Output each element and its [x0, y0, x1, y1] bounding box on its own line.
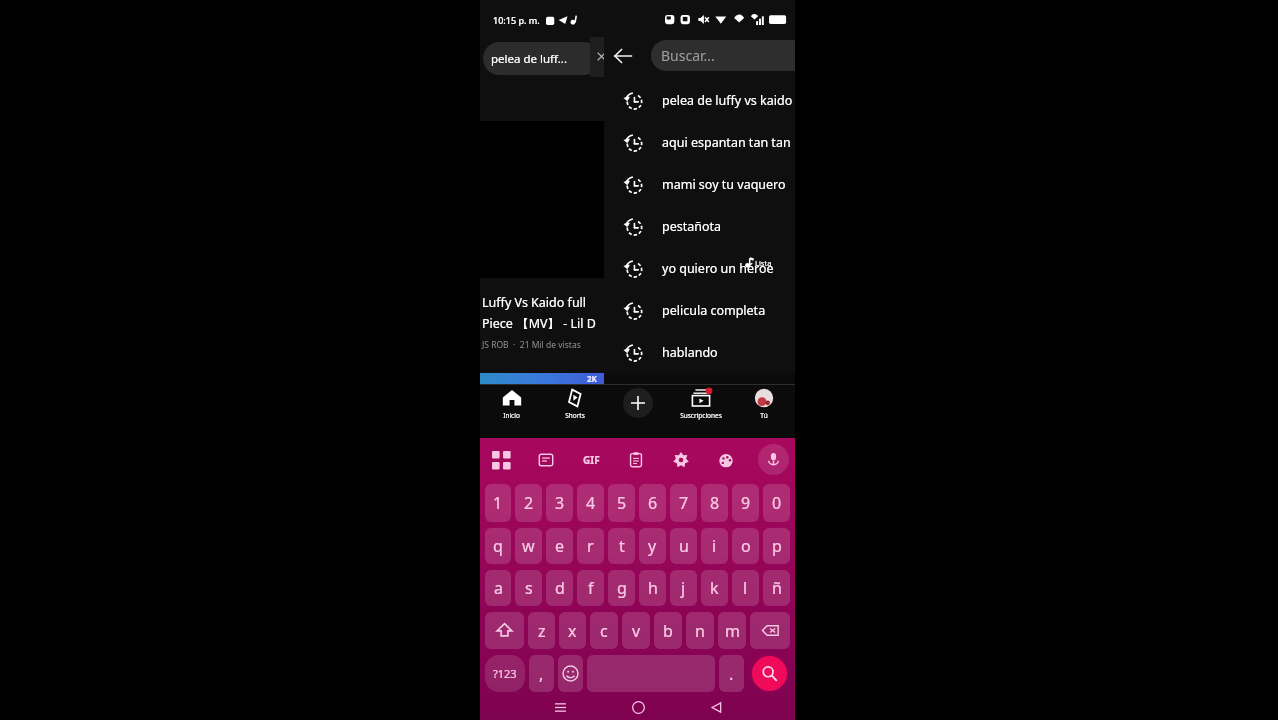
button[interactable]: 9 — [732, 484, 759, 522]
button[interactable]: i — [701, 528, 728, 564]
button[interactable]: f — [577, 570, 604, 606]
staticText: 6 — [648, 492, 658, 514]
button[interactable]: j — [670, 570, 697, 606]
button[interactable]: x — [559, 612, 586, 649]
staticText: pelicula completa — [662, 302, 766, 319]
button[interactable]: 3 — [546, 484, 573, 522]
staticText: o — [741, 535, 751, 557]
button[interactable]: hablando — [604, 331, 795, 373]
staticText: e — [555, 535, 565, 557]
staticText: Inicio — [503, 411, 520, 420]
staticText: y — [648, 535, 657, 557]
staticText: 3 — [555, 492, 565, 514]
staticText: aqui espantan tan tan — [662, 134, 791, 151]
button[interactable]: aqui espantan tan tan — [604, 121, 795, 163]
button[interactable]: Borrar — [750, 612, 790, 649]
button[interactable]: y — [639, 528, 666, 564]
button[interactable]: Crear — [623, 388, 653, 418]
staticText: 1 — [493, 492, 503, 514]
button[interactable]: c — [590, 612, 618, 649]
button[interactable]: , — [529, 655, 554, 692]
button[interactable]: Teclados — [488, 447, 514, 473]
button[interactable]: Ajustes — [668, 447, 694, 473]
button[interactable]: Portapapeles — [623, 447, 649, 473]
button[interactable]: 7 — [670, 484, 697, 522]
button[interactable]: b — [654, 612, 682, 649]
staticText: . — [729, 663, 734, 685]
button[interactable]: GIF — [578, 447, 604, 473]
button[interactable]: 8 — [701, 484, 728, 522]
staticText: 7 — [679, 492, 689, 514]
button[interactable]: pelea de luffy vs kaido — [604, 79, 795, 121]
staticText: r — [587, 535, 594, 557]
staticText: c — [600, 620, 608, 642]
button[interactable]: Buscar... — [651, 40, 795, 71]
staticText: 2 — [524, 492, 534, 514]
staticText: w — [522, 535, 535, 557]
button[interactable]: . — [719, 655, 744, 692]
button[interactable]: 1 — [485, 484, 511, 522]
button[interactable]: Emoji — [558, 655, 583, 692]
button[interactable]: Recientes — [546, 695, 574, 720]
button[interactable]: z — [528, 612, 555, 649]
button[interactable]: Tú — [732, 385, 795, 438]
staticText: Tú — [760, 411, 768, 420]
button[interactable]: v — [622, 612, 650, 649]
button[interactable]: Temas — [713, 447, 739, 473]
button[interactable]: w — [515, 528, 542, 564]
button[interactable]: Voz — [758, 444, 789, 475]
button[interactable]: n — [686, 612, 714, 649]
button[interactable]: d — [546, 570, 573, 606]
button[interactable]: pelea de luff... — [483, 42, 600, 75]
staticText: n — [695, 620, 705, 642]
staticText: g — [617, 577, 627, 599]
button[interactable]: ?123 — [485, 655, 525, 692]
staticText: hablando — [662, 344, 718, 361]
button[interactable]: p — [763, 528, 790, 564]
button[interactable]: 2 — [515, 484, 542, 522]
button[interactable]: 5 — [608, 484, 635, 522]
button[interactable]: 6 — [639, 484, 666, 522]
button[interactable]: Mayúsculas — [485, 612, 524, 649]
button[interactable]: yo quiero un héroe — [604, 247, 795, 289]
button[interactable]: mami soy tu vaquero — [604, 163, 795, 205]
button[interactable]: Stickers — [533, 447, 559, 473]
button[interactable]: t — [608, 528, 635, 564]
button[interactable]: h — [639, 570, 666, 606]
button[interactable]: 0 — [763, 484, 790, 522]
button[interactable]: l — [732, 570, 759, 606]
button[interactable]: Inicio — [624, 695, 652, 720]
staticText: s — [525, 577, 533, 599]
staticText: x — [568, 620, 577, 642]
staticText: q — [493, 535, 503, 557]
staticText: p — [772, 535, 782, 557]
button[interactable]: k — [701, 570, 728, 606]
button[interactable]: ñ — [763, 570, 790, 606]
button[interactable]: u — [670, 528, 697, 564]
button[interactable]: o — [732, 528, 759, 564]
button[interactable]: Atrás — [702, 695, 730, 720]
staticText: ?123 — [493, 666, 517, 681]
button[interactable]: m — [718, 612, 746, 649]
button[interactable]: s — [515, 570, 542, 606]
button[interactable]: Buscar — [752, 656, 787, 691]
staticText: 8 — [710, 492, 720, 514]
button[interactable]: Suscripciones — [669, 385, 732, 438]
staticText: v — [632, 620, 641, 642]
button[interactable]: 4 — [577, 484, 604, 522]
button[interactable]: Atrás — [604, 37, 642, 75]
staticText: , — [539, 663, 544, 685]
staticText: GIF — [583, 453, 600, 467]
button[interactable]: pelicula completa — [604, 289, 795, 331]
button[interactable]: a — [485, 570, 511, 606]
staticText: j — [681, 577, 686, 599]
staticText: pelea de luff... — [491, 51, 568, 67]
button[interactable]: Inicio — [480, 385, 543, 438]
button[interactable]: g — [608, 570, 635, 606]
button[interactable]: Shorts — [543, 385, 606, 438]
button[interactable]: r — [577, 528, 604, 564]
button[interactable]: q — [485, 528, 511, 564]
button[interactable]: e — [546, 528, 573, 564]
button[interactable]: pestañota — [604, 205, 795, 247]
